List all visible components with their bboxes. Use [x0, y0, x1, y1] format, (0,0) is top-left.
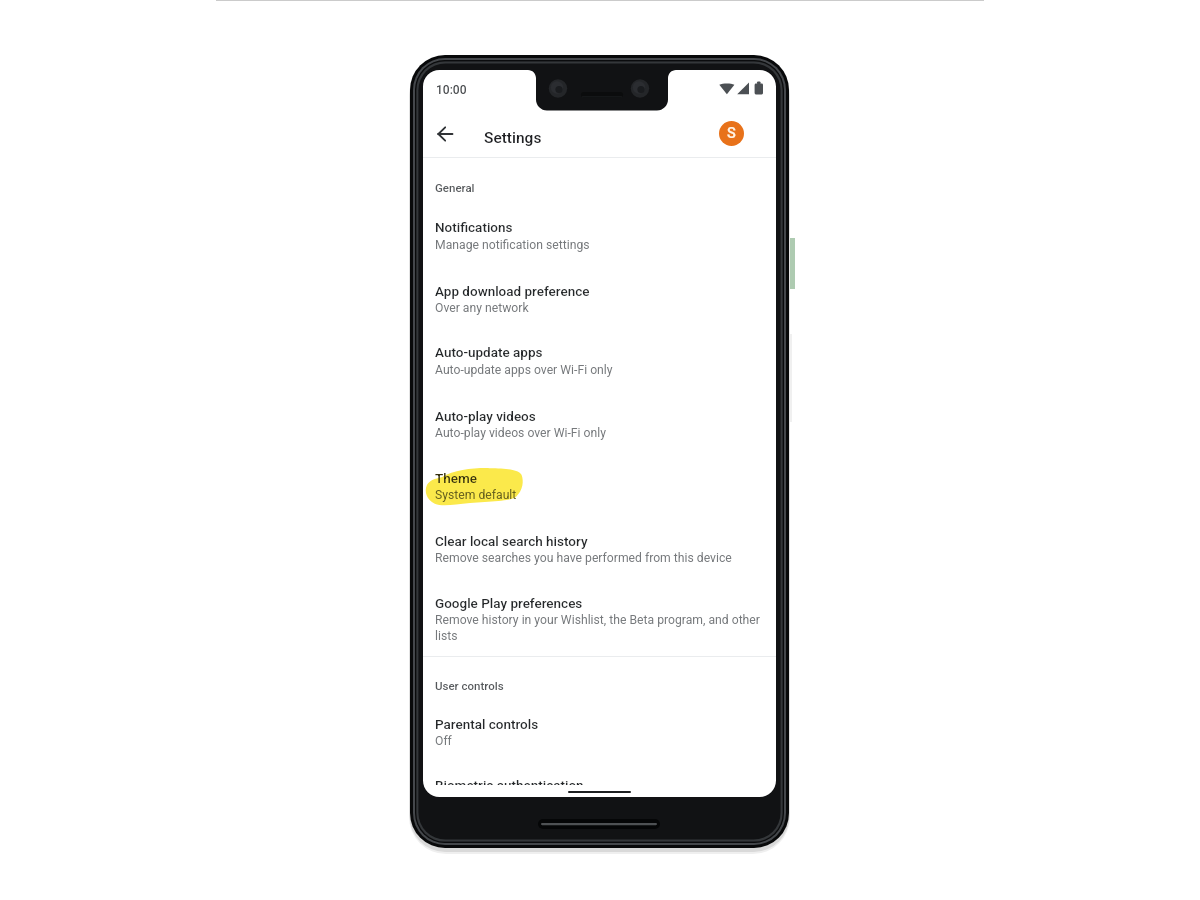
staticText: Auto-update apps	[435, 344, 543, 360]
button[interactable]: Theme	[423, 463, 776, 509]
staticText: Notifications	[435, 219, 513, 235]
button[interactable]: Parental controls	[423, 709, 776, 755]
button[interactable]: Auto-update apps	[423, 337, 776, 383]
staticText: App download preference	[435, 283, 590, 299]
button[interactable]: Biometric authentication	[423, 778, 776, 786]
staticText: General	[435, 181, 475, 194]
staticText: Parental controls	[435, 716, 539, 732]
staticText: Settings	[484, 129, 542, 147]
staticText: Manage notification settings	[435, 238, 590, 252]
button[interactable]: Settings	[469, 114, 699, 160]
staticText: Off	[435, 734, 452, 748]
staticText: User controls	[435, 679, 504, 692]
staticText: System default	[435, 488, 517, 502]
button[interactable]: Notifications	[423, 212, 776, 258]
staticText: Theme	[435, 470, 477, 486]
staticText: Remove history in your Wishlist, the Bet…	[435, 613, 760, 627]
staticText: Remove searches you have performed from …	[435, 551, 732, 565]
staticText: Over any network	[435, 301, 529, 315]
staticText: Google Play preferences	[435, 595, 583, 611]
button[interactable]: Back	[427, 116, 463, 152]
staticText: Auto-update apps over Wi-Fi only	[435, 363, 613, 377]
staticText: lists	[435, 629, 458, 643]
button[interactable]: Google Play preferences	[423, 588, 776, 650]
button[interactable]: Clear local search history	[423, 526, 776, 572]
staticText: Biometric authentication	[435, 778, 584, 785]
staticText: 10:00	[436, 83, 467, 97]
staticText: Auto-play videos	[435, 408, 536, 424]
button[interactable]: Account	[719, 121, 744, 146]
button[interactable]: App download preference	[423, 276, 776, 322]
staticText: Clear local search history	[435, 533, 588, 549]
staticText: Auto-play videos over Wi-Fi only	[435, 426, 606, 440]
staticText: S	[727, 125, 736, 142]
button[interactable]: Auto-play videos	[423, 401, 776, 447]
